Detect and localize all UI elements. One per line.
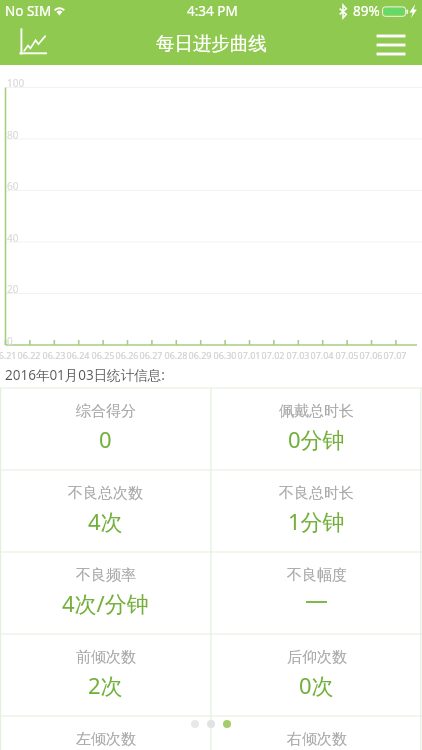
staticText: 07.01 <box>237 349 261 361</box>
staticText: 06.25 <box>91 349 115 361</box>
staticText: 1分钟 <box>288 506 345 536</box>
staticText: 100 <box>7 76 25 90</box>
staticText: 06.26 <box>115 349 139 361</box>
button[interactable]: 不良总时长 <box>211 470 422 552</box>
staticText: 20 <box>7 282 19 296</box>
staticText: 前倾次数 <box>76 648 136 667</box>
staticText: 不良幅度 <box>287 566 347 585</box>
staticText: 0 <box>99 424 112 454</box>
button[interactable]: Chart <box>0 22 56 65</box>
staticText: 06.24 <box>66 349 90 361</box>
button[interactable]: 后仰次数 <box>211 634 422 716</box>
staticText: 06.21 <box>0 349 17 361</box>
button[interactable]: 右倾次数 <box>211 716 422 750</box>
staticText: 右倾次数 <box>287 730 347 749</box>
staticText: 07.02 <box>261 349 285 361</box>
staticText: 80 <box>7 128 19 142</box>
staticText: 06.22 <box>17 349 41 361</box>
staticText: 06.30 <box>213 349 237 361</box>
button[interactable]: 左倾次数 <box>0 716 211 750</box>
staticText: 60 <box>7 179 19 193</box>
staticText: 89% <box>353 2 380 20</box>
staticText: 佩戴总时长 <box>279 402 354 421</box>
staticText: 4次 <box>88 506 123 536</box>
staticText: 0次 <box>299 670 334 700</box>
staticText: 07.04 <box>310 349 334 361</box>
staticText: 不良总时长 <box>279 484 354 503</box>
staticText: No SIM <box>5 2 52 20</box>
staticText: 综合得分 <box>76 402 136 421</box>
button[interactable]: 佩戴总时长 <box>211 388 422 470</box>
staticText: 40 <box>7 231 19 245</box>
staticText: 左倾次数 <box>76 730 136 749</box>
staticText: 07.05 <box>335 349 359 361</box>
button[interactable]: 不良总次数 <box>0 470 211 552</box>
staticText: 06.27 <box>139 349 163 361</box>
button[interactable]: Menu <box>366 22 422 65</box>
button[interactable]: 不良幅度 <box>211 552 422 634</box>
staticText: 4:34 PM <box>187 2 238 20</box>
staticText: 07.07 <box>383 349 407 361</box>
staticText: 06.29 <box>188 349 212 361</box>
staticText: 后仰次数 <box>287 648 347 667</box>
staticText: 不良总次数 <box>68 484 143 503</box>
button[interactable]: 不良频率 <box>0 552 211 634</box>
staticText: 每日进步曲线 <box>156 32 267 55</box>
staticText: 06.28 <box>164 349 188 361</box>
button[interactable]: 综合得分 <box>0 388 211 470</box>
staticText: 2016年01月03日统计信息: <box>5 366 165 384</box>
staticText: 0分钟 <box>288 424 345 454</box>
staticText: 07.03 <box>286 349 310 361</box>
staticText: 2次 <box>88 670 123 700</box>
staticText: 06.23 <box>42 349 66 361</box>
button[interactable]: 前倾次数 <box>0 634 211 716</box>
staticText: 0 <box>7 334 13 348</box>
staticText: 不良频率 <box>76 566 136 585</box>
staticText: 4次/分钟 <box>62 588 149 618</box>
staticText: 07.06 <box>359 349 383 361</box>
